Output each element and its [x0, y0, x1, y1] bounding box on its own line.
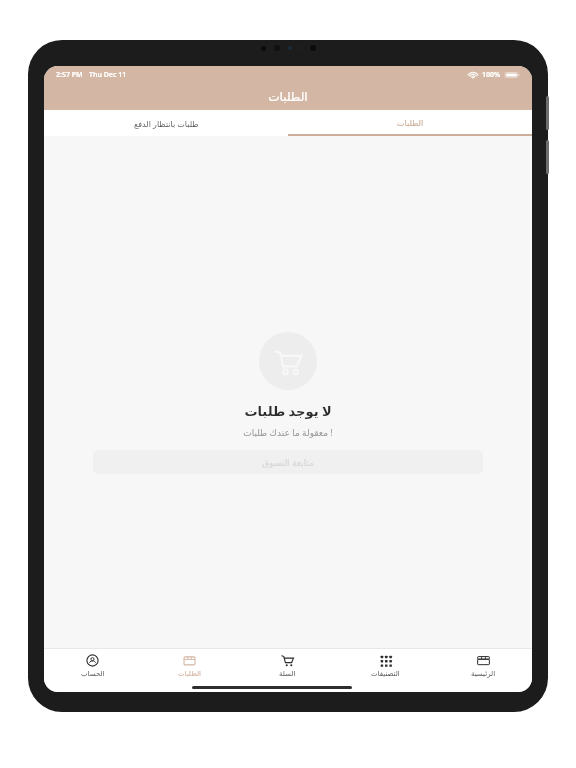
staticText: الرئيسية	[471, 670, 496, 678]
staticText: الحساب	[81, 670, 105, 678]
button[interactable]: طلبات بانتظار الدفع	[44, 110, 288, 136]
button[interactable]: السلة	[238, 649, 336, 682]
button[interactable]: الطلبات	[141, 649, 238, 682]
staticText: متابعة التسوق	[262, 456, 314, 468]
staticText: Thu Dec 11	[89, 70, 127, 80]
staticText: 100%	[482, 70, 501, 80]
button[interactable]: التصنيفات	[336, 649, 434, 682]
button[interactable]: الطلبات	[288, 110, 532, 136]
button[interactable]: الحساب	[44, 649, 141, 682]
button[interactable]: الرئيسية	[434, 649, 532, 682]
staticText: لا يوجد طلبات	[244, 402, 332, 420]
staticText: معقولة ما عندك طلبات !	[243, 426, 333, 438]
staticText: 2:57 PM	[56, 70, 83, 80]
staticText: طلبات بانتظار الدفع	[134, 118, 199, 129]
staticText: الطلبات	[178, 670, 201, 678]
staticText: التصنيفات	[371, 670, 400, 678]
staticText: السلة	[279, 670, 296, 678]
staticText: الطلبات	[397, 119, 424, 128]
staticText: الطلبات	[268, 90, 308, 104]
